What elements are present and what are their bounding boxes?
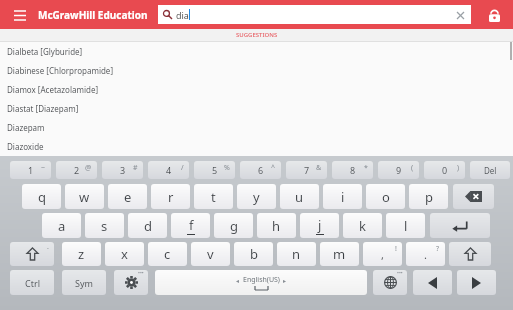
button[interactable]: i [323,184,362,209]
button[interactable]: l [386,213,425,238]
button[interactable]: 8 [332,161,373,179]
button[interactable]: b [234,242,273,266]
staticText: Ctrl [25,277,40,289]
button[interactable]: j [300,213,339,238]
staticText: ? [436,244,440,254]
staticText: h [272,217,281,235]
staticText: e [124,188,132,206]
staticText: v [207,245,214,263]
staticText: Diabinese [Chlorpropamide] [7,65,114,76]
button[interactable]: q [22,184,61,209]
button[interactable]: Right [457,270,496,295]
button[interactable]: Del [470,161,510,179]
button[interactable]: n [277,242,316,266]
button[interactable]: 7 [286,161,327,179]
staticText: m [333,245,346,263]
button[interactable]: y [237,184,276,209]
button[interactable]: r [151,184,190,209]
button[interactable]: Diazepam [0,118,513,137]
button[interactable]: v [191,242,230,266]
staticText: s [101,217,108,235]
button[interactable]: 0 [424,161,465,179]
staticText: ~ [41,163,46,173]
button[interactable]: o [366,184,405,209]
button[interactable]: Diastat [Diazepam] [0,99,513,118]
staticText: 6 [258,164,264,176]
staticText: q [38,188,46,206]
button[interactable]: k [343,213,382,238]
button[interactable]: Enter [430,213,490,238]
button[interactable]: Shift [449,242,491,266]
staticText: dia [176,9,189,21]
staticText: & [316,163,322,173]
button[interactable]: x [105,242,144,266]
button[interactable]: 3 [102,161,143,179]
button[interactable]: 1 [10,161,51,179]
staticText: 7 [304,164,310,176]
staticText: ▸ [283,277,287,284]
button[interactable]: e [108,184,147,209]
button[interactable]: g [214,213,253,238]
button[interactable]: Clear [452,7,468,23]
staticText: b [250,245,258,263]
button[interactable]: , [363,242,402,266]
button[interactable]: Left [413,270,452,295]
staticText: ••• [397,270,403,277]
button[interactable]: . [406,242,445,266]
staticText: 5 [212,164,218,176]
staticText: d [144,217,152,235]
button[interactable]: a [42,213,81,238]
button[interactable]: Ctrl [10,270,54,295]
staticText: 1 [28,164,34,176]
staticText: Sym [75,277,93,289]
button[interactable]: dia [158,5,471,24]
button[interactable]: Diazoxide [0,137,513,156]
staticText: p [425,188,433,206]
button[interactable]: Diabinese [Chlorpropamide] [0,61,513,80]
button[interactable]: 6 [240,161,281,179]
button[interactable]: Backspace [453,184,494,209]
staticText: 3 [120,164,126,176]
button[interactable]: c [148,242,187,266]
button[interactable]: w [65,184,104,209]
staticText: English(US) [243,275,280,285]
button[interactable]: Shift [10,242,54,266]
button[interactable]: m [320,242,359,266]
staticText: j [318,216,322,234]
button[interactable]: s [85,213,124,238]
button[interactable]: f [171,213,210,238]
button[interactable]: z [62,242,101,266]
button[interactable]: t [194,184,233,209]
button[interactable]: ◂ [155,270,367,295]
staticText: u [295,188,304,206]
button[interactable]: Dialbeta [Glyburide] [0,42,513,61]
staticText: * [364,163,368,173]
staticText: 0 [442,164,448,176]
staticText: % [224,163,230,173]
button[interactable]: u [280,184,319,209]
button[interactable]: Sym [62,270,106,295]
staticText: Diastat [Diazepam] [7,103,79,114]
button[interactable]: h [257,213,296,238]
button[interactable]: 4 [148,161,189,179]
button[interactable]: Diamox [Acetazolamide] [0,80,513,99]
button[interactable]: d [128,213,167,238]
staticText: / [181,163,184,173]
staticText: 4 [166,164,172,176]
staticText: t [211,188,216,206]
staticText: w [79,188,90,206]
button[interactable]: 5 [194,161,235,179]
button[interactable]: Menu [8,3,32,27]
button[interactable]: 9 [378,161,419,179]
button[interactable]: Lock [483,4,505,26]
button[interactable]: Change language [373,270,407,295]
button[interactable]: p [409,184,448,209]
button[interactable]: 2 [56,161,97,179]
staticText: r [168,188,174,206]
staticText: k [359,217,366,235]
staticText: 9 [396,164,402,176]
staticText: ••• [138,270,144,277]
button[interactable]: Settings [114,270,148,295]
staticText: ) [457,163,460,173]
staticText: x [121,245,128,263]
